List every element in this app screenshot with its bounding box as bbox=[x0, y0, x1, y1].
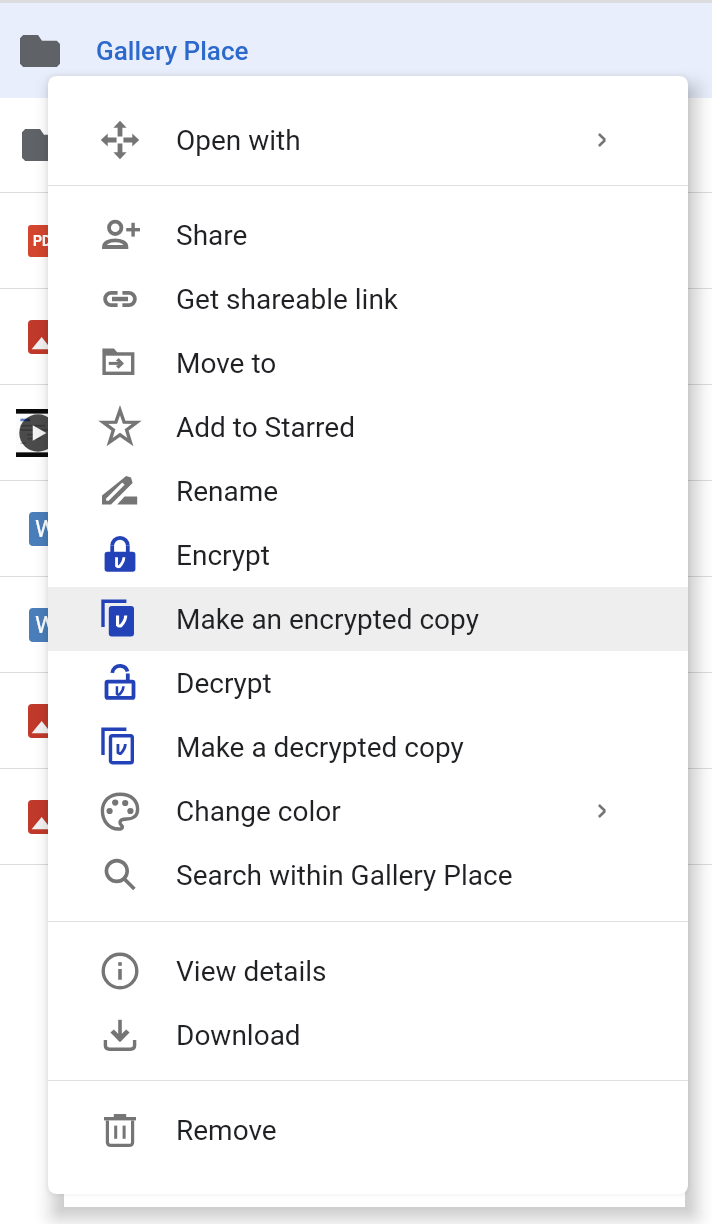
staticText: Make an encrypted copy bbox=[176, 603, 479, 636]
button[interactable]: Change color bbox=[48, 779, 688, 843]
button[interactable]: Download bbox=[48, 1003, 688, 1067]
staticText: IMG_2120.jpg bbox=[96, 706, 256, 736]
staticText: Open with bbox=[176, 124, 301, 157]
button[interactable]: Move to bbox=[48, 331, 688, 395]
staticText: Decrypt bbox=[176, 667, 272, 700]
button[interactable]: Clip.mp4 bbox=[0, 385, 712, 480]
button[interactable]: Make a decrypted copy bbox=[48, 715, 688, 779]
button[interactable]: PDF bbox=[0, 193, 712, 288]
button[interactable]: Get shareable link bbox=[48, 267, 688, 331]
staticText: IMG_2043.jpg bbox=[96, 322, 256, 352]
button[interactable]: W bbox=[0, 481, 712, 576]
button[interactable]: IMG_2043.jpg bbox=[0, 289, 712, 384]
staticText: Itinerary.pdf bbox=[96, 226, 234, 256]
staticText: View details bbox=[176, 955, 327, 988]
staticText: Move to bbox=[176, 347, 277, 380]
button[interactable]: Share bbox=[48, 203, 688, 267]
staticText: Encrypt bbox=[176, 539, 270, 572]
button[interactable]: Travel bbox=[0, 98, 712, 192]
button[interactable]: Add to Starred bbox=[48, 395, 688, 459]
staticText: Change color bbox=[176, 795, 341, 828]
button[interactable]: Rename bbox=[48, 459, 688, 523]
button[interactable]: Encrypt bbox=[48, 523, 688, 587]
staticText: Clip.mp4 bbox=[96, 418, 200, 448]
button[interactable]: Decrypt bbox=[48, 651, 688, 715]
staticText: Notes.docx bbox=[96, 514, 228, 544]
button[interactable]: IMG_2120.jpg bbox=[0, 673, 712, 768]
staticText: W bbox=[35, 515, 57, 543]
button[interactable]: Search within Gallery Place bbox=[48, 843, 688, 907]
staticText: Add to Starred bbox=[176, 411, 355, 444]
button[interactable]: Gallery Place bbox=[0, 3, 712, 98]
staticText: Rename bbox=[176, 475, 279, 508]
staticText: Search within Gallery Place bbox=[176, 859, 513, 892]
staticText: Get shareable link bbox=[176, 283, 399, 316]
staticText: Download bbox=[176, 1019, 301, 1052]
staticText: Travel bbox=[96, 130, 166, 160]
staticText: Share bbox=[176, 219, 248, 252]
button[interactable]: View details bbox=[48, 939, 688, 1003]
button[interactable]: Remove bbox=[48, 1098, 688, 1162]
button[interactable]: W bbox=[0, 577, 712, 672]
staticText: IMG_2155.jpg bbox=[96, 802, 256, 832]
button[interactable]: Open with bbox=[48, 108, 688, 172]
button[interactable]: IMG_2155.jpg bbox=[0, 769, 712, 864]
staticText: Report.docx bbox=[96, 610, 237, 640]
staticText: Remove bbox=[176, 1114, 277, 1147]
staticText: Make a decrypted copy bbox=[176, 731, 464, 764]
button[interactable]: Make an encrypted copy bbox=[48, 587, 688, 651]
staticText: Gallery Place bbox=[96, 36, 249, 66]
staticText: W bbox=[35, 611, 57, 639]
staticText: PDF bbox=[33, 233, 59, 249]
